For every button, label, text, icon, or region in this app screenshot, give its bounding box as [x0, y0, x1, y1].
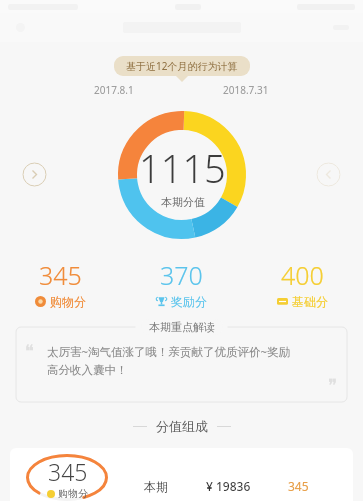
staticText: 2018.7.31 [223, 83, 269, 97]
button[interactable]: Next period [316, 162, 341, 187]
staticText: 购物分 [58, 487, 88, 500]
staticText: 本期分值 [161, 195, 205, 209]
staticText: 分值组成 [156, 418, 208, 434]
staticText: 基础分 [292, 294, 328, 309]
staticText: ❝ [25, 341, 35, 361]
staticText: 奖励分 [171, 294, 207, 309]
staticText: 基于近12个月的行为计算 [126, 59, 238, 73]
staticText: 本期 [144, 479, 168, 494]
staticText: 345 [48, 456, 88, 487]
staticText: 370 [160, 258, 203, 292]
staticText: 2017.8.1 [94, 83, 134, 97]
button[interactable]: 345 [0, 256, 121, 311]
button[interactable]: 400 [242, 256, 363, 311]
button[interactable]: 基于近12个月的行为计算 [114, 56, 250, 76]
staticText: 400 [281, 258, 324, 292]
staticText: 345 [288, 478, 309, 494]
staticText: 太厉害~淘气值涨了哦！亲贡献了优质评价~奖励 高分收入囊中！ [47, 344, 291, 378]
staticText: 1115 [139, 142, 226, 194]
button[interactable]: 345 [10, 448, 353, 501]
staticText: 购物分 [50, 294, 86, 309]
button[interactable]: 370 [121, 256, 242, 311]
button[interactable]: Previous period [22, 162, 47, 187]
staticText: 本期重点解读 [149, 320, 215, 334]
staticText: 345 [39, 258, 82, 292]
staticText: ¥ 19836 [206, 478, 251, 494]
staticText: ❞ [328, 375, 338, 395]
